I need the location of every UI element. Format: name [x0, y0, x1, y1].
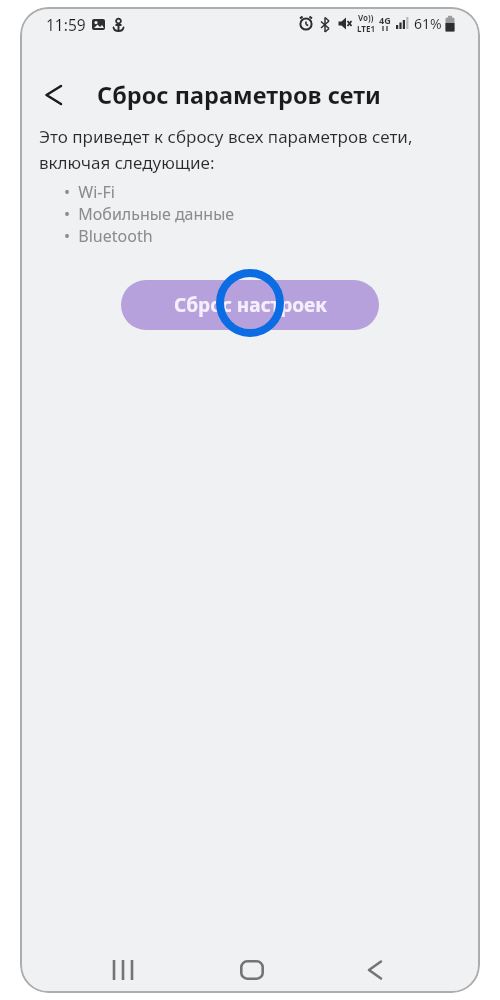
staticText: 4G — [379, 14, 391, 26]
button[interactable]: Сброс параметров сети — [38, 76, 381, 114]
button[interactable] — [106, 953, 140, 987]
button[interactable]: Сброс настроек — [121, 280, 379, 330]
button[interactable] — [358, 953, 392, 987]
staticText: • Мобильные данные — [64, 203, 235, 225]
staticText: LTE1 — [357, 23, 375, 34]
staticText: Это приведет к сбросу всех параметров се… — [39, 125, 413, 174]
staticText: • Bluetooth — [64, 225, 153, 247]
staticText: • Wi-Fi — [64, 181, 115, 203]
staticText: Vo)) — [358, 12, 374, 23]
button[interactable] — [235, 953, 269, 987]
staticText: Сброс параметров сети — [97, 79, 381, 111]
staticText: Сброс настроек — [174, 292, 327, 318]
staticText: 61% — [414, 14, 442, 33]
staticText: 11:59 — [46, 14, 86, 35]
